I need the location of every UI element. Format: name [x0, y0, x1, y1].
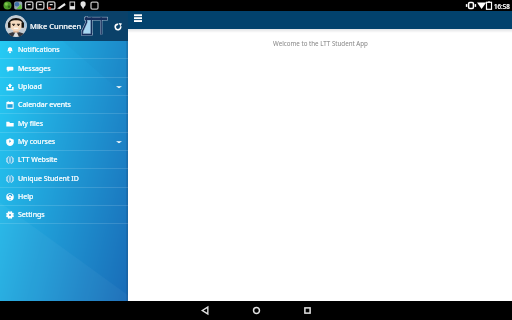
staticText: Help: [18, 192, 34, 202]
button[interactable]: Back: [190, 301, 220, 320]
staticText: Calendar events: [18, 100, 71, 110]
staticText: Mike Cunneen: [30, 21, 82, 31]
button[interactable]: Home: [241, 301, 271, 320]
button[interactable]: Refresh: [112, 21, 123, 32]
button[interactable]: My courses: [0, 133, 128, 151]
staticText: Welcome to the LTT Student App: [273, 39, 368, 47]
button[interactable]: Unique Student ID: [0, 170, 128, 188]
button[interactable]: LTT Website: [0, 151, 128, 169]
staticText: Notifications: [18, 45, 60, 55]
staticText: My courses: [18, 137, 56, 147]
staticText: 16:58: [494, 2, 510, 10]
button[interactable]: Calendar events: [0, 96, 128, 114]
staticText: LTT Website: [18, 155, 58, 165]
button[interactable]: My files: [0, 115, 128, 133]
staticText: Messages: [18, 64, 51, 74]
staticText: Upload: [18, 82, 42, 92]
button[interactable]: Upload: [0, 78, 128, 96]
button[interactable]: Messages: [0, 60, 128, 78]
button[interactable]: Recent apps: [292, 301, 322, 320]
staticText: My files: [18, 119, 44, 129]
staticText: Settings: [18, 210, 45, 220]
button[interactable]: Open navigation drawer: [131, 11, 145, 25]
staticText: Unique Student ID: [18, 174, 79, 184]
button[interactable]: Notifications: [0, 41, 128, 59]
button[interactable]: Help: [0, 188, 128, 206]
button[interactable]: Settings: [0, 206, 128, 224]
